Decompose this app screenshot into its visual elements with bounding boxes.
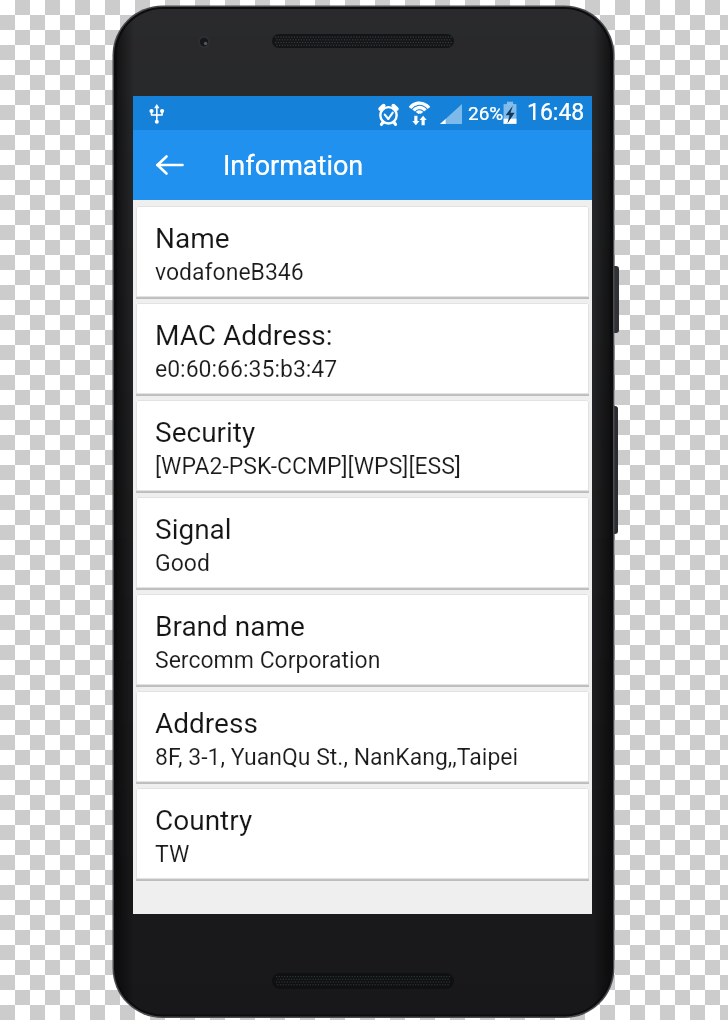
staticText: Good (155, 550, 210, 577)
button[interactable]: Address (136, 691, 589, 782)
staticText: Information (223, 150, 364, 182)
button[interactable]: Signal (136, 497, 589, 588)
staticText: Name (155, 222, 230, 255)
staticText: vodafoneB346 (155, 259, 304, 286)
staticText: 8F, 3-1, YuanQu St., NanKang,,Taipei (155, 744, 519, 771)
staticText: Brand name (155, 610, 305, 643)
button[interactable]: MAC Address: (136, 303, 589, 394)
staticText: MAC Address: (155, 319, 333, 352)
button[interactable]: Security (136, 400, 589, 491)
staticText: Signal (155, 513, 232, 546)
staticText: 26% (468, 102, 504, 124)
staticText: Country (155, 804, 253, 837)
staticText: Address (155, 707, 258, 740)
button[interactable]: Name (136, 206, 589, 297)
staticText: Security (155, 416, 256, 449)
staticText: Sercomm Corporation (155, 647, 381, 674)
staticText: [WPA2-PSK-CCMP][WPS][ESS] (155, 453, 461, 480)
staticText: 16:48 (527, 99, 585, 126)
staticText: e0:60:66:35:b3:47 (155, 356, 338, 383)
button[interactable]: Brand name (136, 594, 589, 685)
button[interactable]: Back (141, 136, 199, 194)
staticText: TW (155, 841, 190, 868)
button[interactable]: Country (136, 788, 589, 879)
